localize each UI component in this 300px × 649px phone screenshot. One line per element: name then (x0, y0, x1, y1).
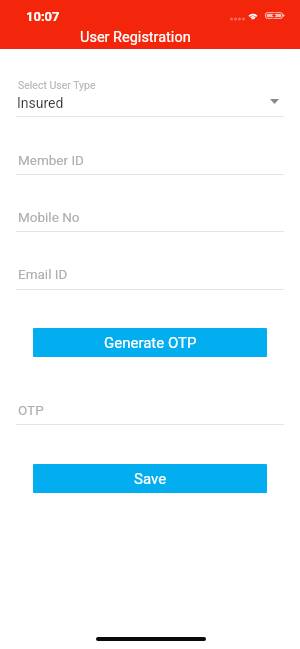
button[interactable]: OTP (16, 394, 284, 425)
other: Wi-Fi (247, 11, 259, 20)
other: Signal (230, 17, 244, 22)
button[interactable]: Generate OTP (33, 328, 267, 357)
staticText: Select User Type (18, 79, 96, 91)
button[interactable]: Save (33, 464, 267, 493)
button[interactable]: Mobile No (16, 201, 284, 232)
staticText: Email ID (18, 266, 68, 282)
staticText: OTP (18, 402, 44, 418)
staticText: Generate OTP (104, 334, 197, 352)
staticText: Insured (17, 95, 64, 111)
other: Battery charging (265, 11, 287, 20)
staticText: 10:07 (26, 9, 60, 24)
button[interactable]: Email ID (16, 258, 284, 290)
staticText: Save (134, 470, 167, 488)
staticText: User Registration (80, 29, 191, 46)
button[interactable]: Select User Type (16, 73, 284, 117)
button[interactable]: Member ID (16, 144, 284, 175)
staticText: Mobile No (18, 209, 80, 225)
staticText: Member ID (18, 152, 84, 168)
